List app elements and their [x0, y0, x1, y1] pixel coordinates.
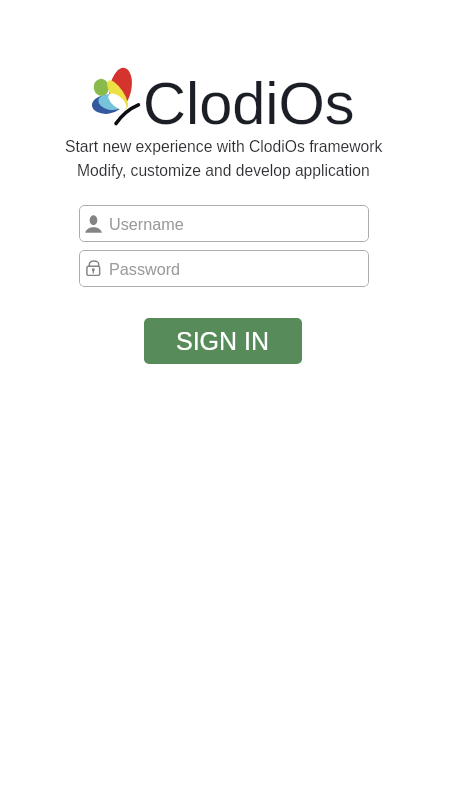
staticText: SIGN IN	[176, 327, 270, 355]
staticText: Modify, customize and develop applicatio…	[77, 162, 370, 179]
other: Password	[85, 260, 103, 278]
staticText: Username	[109, 215, 184, 233]
button[interactable]: SIGN IN	[144, 318, 302, 364]
button[interactable]: Password	[79, 250, 369, 287]
staticText: Password	[109, 260, 181, 278]
button[interactable]: User name	[79, 205, 369, 242]
staticText: Start new experience with ClodiOs framew…	[65, 138, 383, 156]
staticText: ClodiOs	[143, 70, 355, 136]
other: User name	[85, 215, 103, 233]
